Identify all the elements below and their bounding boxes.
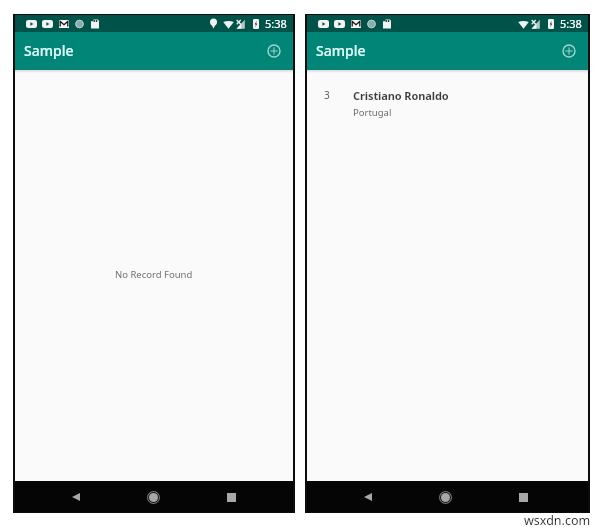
staticText: 5:38	[265, 16, 287, 31]
button[interactable]: Back	[61, 482, 91, 512]
button[interactable]: Home	[430, 482, 460, 512]
staticText: Sample	[24, 41, 74, 60]
staticText: No Record Found	[115, 268, 193, 281]
button[interactable]: Recents	[216, 482, 246, 512]
button[interactable]: Add	[261, 38, 287, 64]
button[interactable]: Home	[138, 482, 168, 512]
staticText: Sample	[316, 41, 366, 60]
button[interactable]: Recents	[508, 482, 538, 512]
staticText: 5:38	[560, 16, 582, 31]
button[interactable]: Add	[556, 38, 582, 64]
staticText: Cristiano Ronaldo	[353, 88, 449, 103]
button[interactable]: Back	[353, 482, 383, 512]
staticText: Portugal	[353, 106, 392, 119]
staticText: wsxdn.com	[524, 512, 591, 529]
button[interactable]: 3	[307, 70, 588, 119]
staticText: 3	[324, 88, 330, 102]
